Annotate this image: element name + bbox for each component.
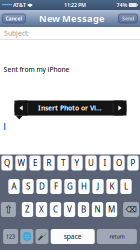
staticText: New Message <box>39 12 105 25</box>
staticText: AT&T <box>12 1 26 9</box>
button[interactable]: T <box>57 155 69 170</box>
staticText: G <box>67 181 73 192</box>
button[interactable]: M <box>106 202 117 217</box>
button[interactable]: L <box>120 179 132 194</box>
button[interactable]: C <box>50 202 61 217</box>
staticText: D <box>39 181 45 192</box>
staticText: Send <box>122 15 134 22</box>
button[interactable]: Y <box>71 155 83 170</box>
staticText: E <box>33 158 37 168</box>
staticText: M <box>108 204 115 215</box>
button[interactable]: Next <box>113 100 126 115</box>
staticText: ⌫ <box>126 205 137 214</box>
staticText: N <box>94 204 100 215</box>
button[interactable]: Previous <box>14 100 27 115</box>
button[interactable]: O <box>113 155 125 170</box>
staticText: B <box>81 204 86 215</box>
button[interactable]: Z <box>22 202 33 217</box>
staticText: O <box>116 158 122 168</box>
staticText: A <box>11 181 16 192</box>
button[interactable]: N <box>92 202 103 217</box>
staticText: L <box>124 181 128 192</box>
staticText: Z <box>25 204 30 215</box>
staticText: X <box>39 204 44 215</box>
button[interactable]: I <box>99 155 111 170</box>
staticText: T <box>61 158 65 168</box>
button[interactable]: R <box>43 155 55 170</box>
staticText: Subject: <box>4 29 29 38</box>
staticText: P <box>130 158 135 168</box>
button[interactable]: J <box>92 179 104 194</box>
staticText: Sent from my iPhone <box>3 65 69 74</box>
button[interactable]: V <box>64 202 75 217</box>
button[interactable]: 🌐 <box>20 229 33 244</box>
staticText: U <box>88 158 94 168</box>
button[interactable]: ⇧ <box>1 202 16 217</box>
staticText: Y <box>74 158 79 168</box>
button[interactable]: space <box>51 229 95 244</box>
staticText: I <box>103 158 106 168</box>
staticText: Insert Photo or Video <box>38 104 103 112</box>
staticText: K <box>109 181 114 192</box>
staticText: S <box>26 181 30 192</box>
button[interactable]: Cancel <box>2 14 25 23</box>
staticText: C <box>53 204 58 215</box>
button[interactable]: Send <box>118 14 137 23</box>
staticText: 🌐 <box>22 232 32 241</box>
button[interactable]: P <box>127 155 139 170</box>
staticText: V <box>67 204 72 215</box>
staticText: W <box>17 158 24 168</box>
staticText: J <box>97 181 99 192</box>
button[interactable]: 🎤 <box>35 229 48 244</box>
button[interactable]: B <box>78 202 89 217</box>
button[interactable]: return <box>97 229 137 244</box>
staticText: space <box>64 232 82 241</box>
button[interactable]: W <box>15 155 27 170</box>
button[interactable]: E <box>29 155 41 170</box>
button[interactable]: K <box>106 179 118 194</box>
staticText: 123 <box>6 233 15 240</box>
button[interactable]: D <box>36 179 48 194</box>
staticText: F <box>54 181 58 192</box>
staticText: return <box>109 233 124 240</box>
button[interactable]: G <box>64 179 76 194</box>
button[interactable]: F <box>50 179 62 194</box>
button[interactable]: Insert Photo or Video <box>36 104 105 112</box>
staticText: H <box>81 181 87 192</box>
staticText: 74% <box>117 1 128 9</box>
staticText: Q <box>4 158 10 168</box>
staticText: ⇧ <box>4 203 13 215</box>
staticText: 11:22 PM <box>64 1 86 9</box>
staticText: ••••• <box>2 1 12 9</box>
staticText: Cancel <box>5 15 22 22</box>
button[interactable]: Q <box>1 155 13 170</box>
button[interactable]: A <box>8 179 20 194</box>
button[interactable]: ⌫ <box>123 202 139 217</box>
button[interactable]: H <box>78 179 90 194</box>
button[interactable]: 123 <box>3 229 18 244</box>
button[interactable]: U <box>85 155 97 170</box>
staticText: R <box>46 158 51 168</box>
button[interactable]: S <box>22 179 34 194</box>
button[interactable]: X <box>36 202 47 217</box>
staticText: 🎤 <box>37 232 47 241</box>
